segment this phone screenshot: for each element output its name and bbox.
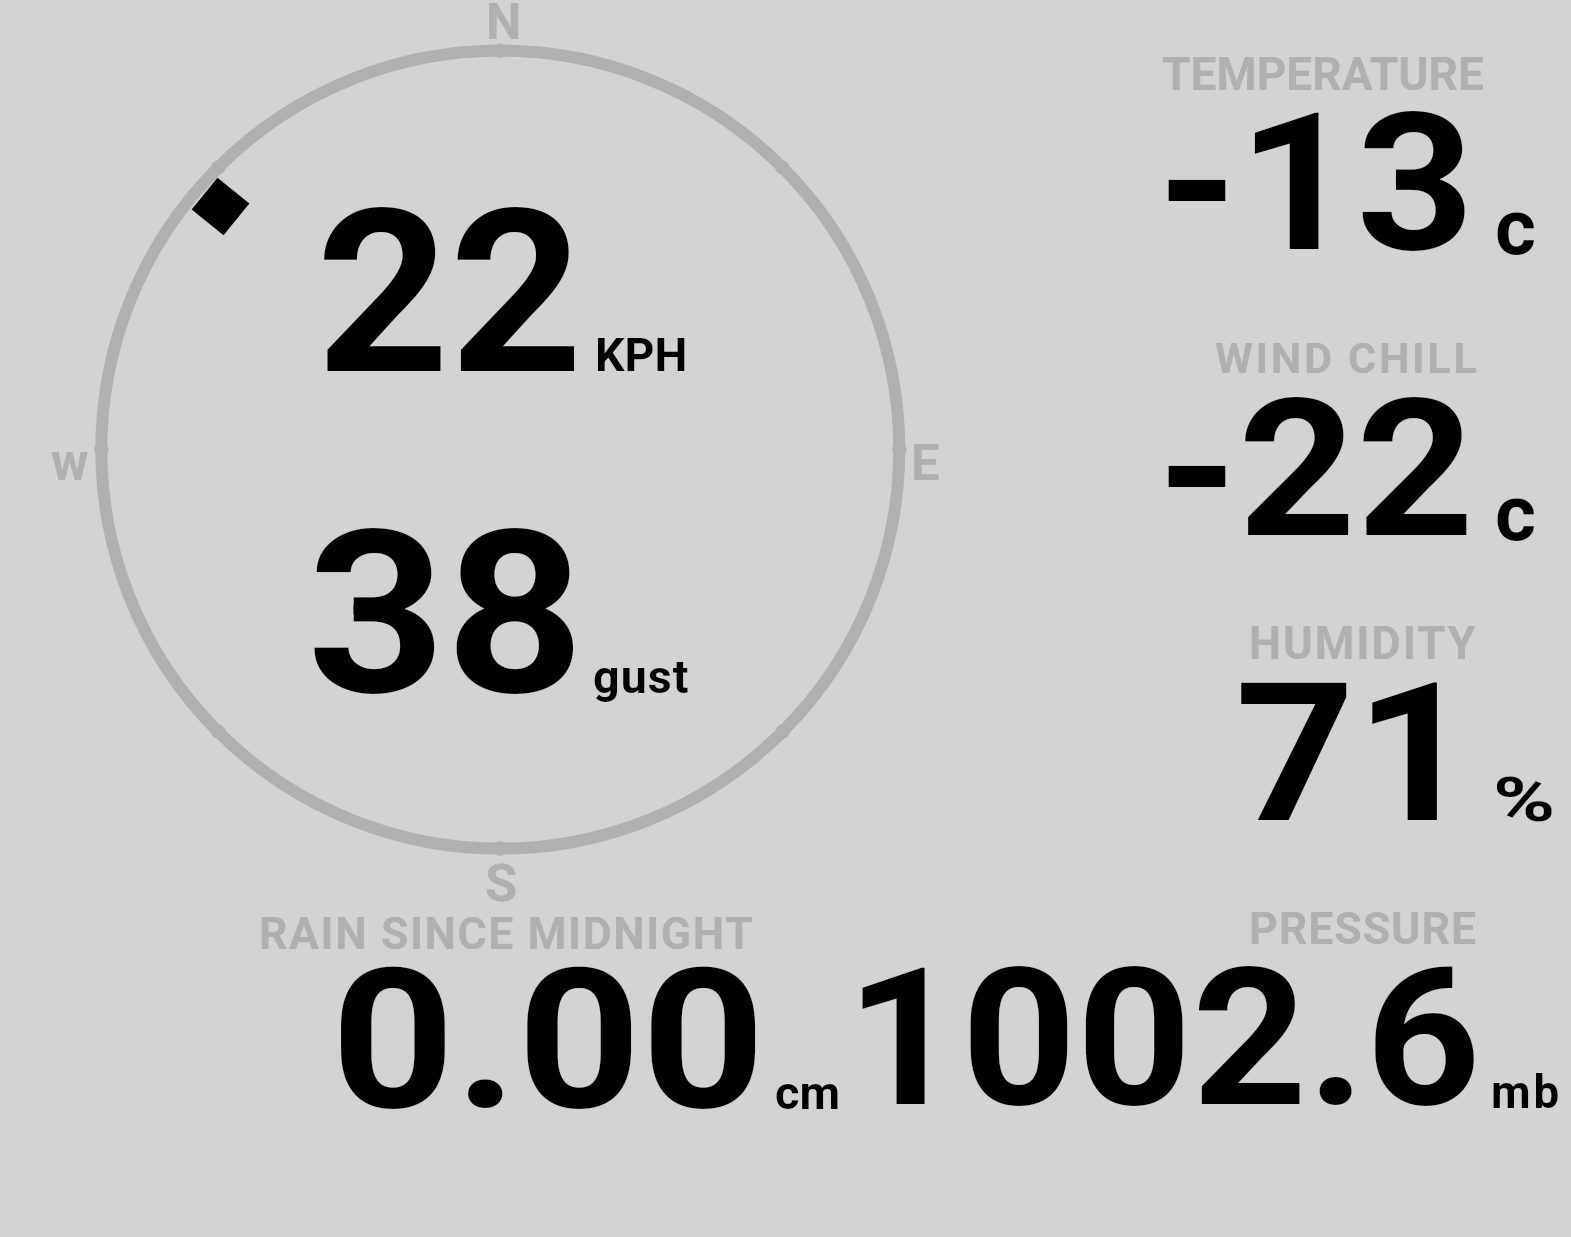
staticText: 22 bbox=[316, 161, 583, 426]
staticText: c bbox=[1495, 467, 1536, 559]
staticText: E bbox=[911, 433, 940, 492]
staticText: HUMIDITY bbox=[1249, 617, 1478, 670]
staticText: 0.00 bbox=[331, 926, 765, 1154]
staticText: RAIN SINCE MIDNIGHT bbox=[259, 908, 755, 960]
staticText: -13 bbox=[1157, 71, 1475, 296]
staticText: cm bbox=[775, 1065, 841, 1120]
staticText: TEMPERATURE bbox=[1162, 47, 1484, 101]
staticText: 38 bbox=[307, 482, 584, 747]
staticText: N bbox=[486, 0, 522, 52]
staticText: c bbox=[1495, 181, 1536, 273]
button[interactable]: Pressure 1002.6 mb bbox=[855, 895, 1571, 1125]
button[interactable]: Wind chill -22 c bbox=[1100, 325, 1571, 595]
staticText: 71 bbox=[1235, 642, 1475, 867]
button[interactable]: Wind speed 22 KPH, gust 38, direction no… bbox=[60, 20, 960, 890]
button[interactable]: Humidity 71 % bbox=[1100, 610, 1571, 880]
staticText: WIND CHILL bbox=[1215, 333, 1480, 384]
button[interactable]: Rain since midnight 0.00 cm bbox=[250, 895, 850, 1125]
staticText: S bbox=[485, 852, 518, 913]
staticText: mb bbox=[1491, 1066, 1562, 1120]
staticText: % bbox=[1493, 764, 1556, 837]
staticText: PRESSURE bbox=[1249, 903, 1478, 955]
staticText: gust bbox=[593, 650, 690, 704]
staticText: KPH bbox=[595, 328, 688, 382]
staticText: w bbox=[51, 433, 89, 493]
button[interactable]: Temperature -13 c bbox=[1100, 40, 1571, 310]
staticText: -22 bbox=[1157, 357, 1475, 582]
staticText: 1002.6 bbox=[846, 927, 1482, 1150]
